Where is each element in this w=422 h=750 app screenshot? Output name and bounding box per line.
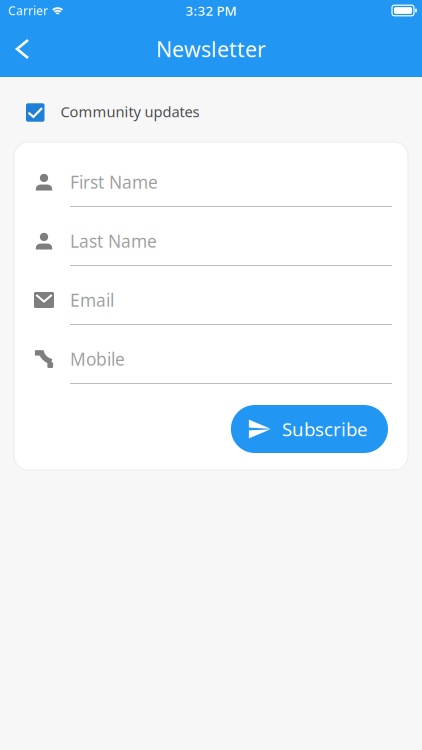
- staticText: 3:32 PM: [185, 2, 236, 19]
- staticText: Subscribe: [282, 417, 368, 441]
- button[interactable]: Mobile: [34, 352, 392, 384]
- staticText: First Name: [70, 170, 158, 193]
- staticText: Carrier: [8, 2, 48, 18]
- button[interactable]: Back: [0, 27, 45, 71]
- staticText: Email: [70, 288, 114, 311]
- button[interactable]: Subscribe: [231, 405, 388, 453]
- button[interactable]: Last Name: [34, 234, 392, 266]
- staticText: Mobile: [70, 347, 125, 370]
- button[interactable]: First Name: [34, 175, 392, 207]
- staticText: Community updates: [60, 102, 199, 121]
- button[interactable]: Community updates: [0, 77, 422, 142]
- staticText: Newsletter: [156, 35, 266, 63]
- button[interactable]: Email: [34, 293, 392, 325]
- staticText: Last Name: [70, 229, 157, 252]
